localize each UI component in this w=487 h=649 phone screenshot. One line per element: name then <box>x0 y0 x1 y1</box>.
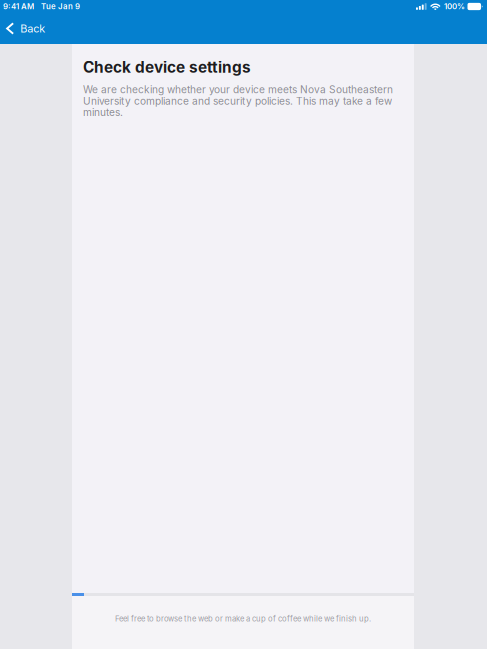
staticText: We are checking whether your device meet… <box>83 84 393 118</box>
staticText: Feel free to browse the web or make a cu… <box>115 614 371 623</box>
staticText: 100% <box>444 2 465 11</box>
button[interactable]: Back <box>0 13 55 44</box>
staticText: 9:41 AM <box>3 2 34 11</box>
staticText: Tue Jan 9 <box>41 2 80 11</box>
staticText: Back <box>20 22 45 35</box>
staticText: Check device settings <box>83 58 251 77</box>
